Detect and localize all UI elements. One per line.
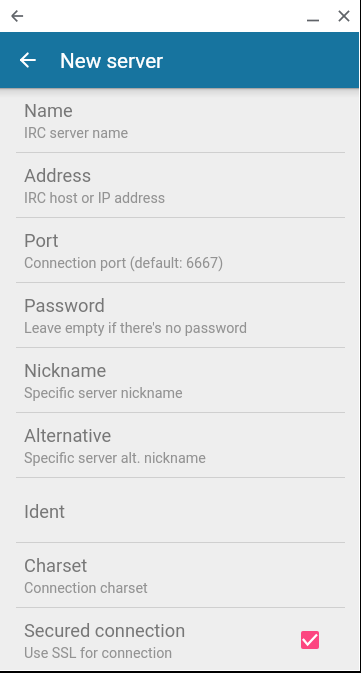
staticText: Alternative bbox=[24, 425, 112, 446]
staticText: Connection charset bbox=[24, 580, 148, 597]
button[interactable]: Charset bbox=[0, 543, 361, 608]
staticText: Name bbox=[24, 100, 73, 121]
staticText: Connection port (default: 6667) bbox=[24, 255, 224, 272]
button[interactable]: Password bbox=[0, 283, 361, 348]
staticText: Ident bbox=[24, 501, 66, 522]
staticText: New server bbox=[60, 49, 164, 73]
button[interactable]: Navigate up bbox=[8, 40, 48, 80]
button[interactable]: Nickname bbox=[0, 348, 361, 413]
staticText: Use SSL for connection bbox=[24, 645, 173, 662]
staticText: Specific server alt. nickname bbox=[24, 450, 206, 467]
staticText: IRC host or IP address bbox=[24, 190, 166, 207]
button[interactable]: Close bbox=[329, 1, 359, 31]
button[interactable]: Port bbox=[0, 218, 361, 283]
button[interactable]: Back bbox=[1, 0, 34, 32]
button[interactable]: Secured connection bbox=[0, 608, 361, 673]
button[interactable]: Secured connection bbox=[301, 631, 319, 649]
staticText: Port bbox=[24, 230, 59, 251]
staticText: Password bbox=[24, 295, 105, 316]
staticText: Nickname bbox=[24, 360, 107, 381]
staticText: Address bbox=[24, 165, 92, 186]
button[interactable]: Address bbox=[0, 153, 361, 218]
staticText: Secured connection bbox=[24, 620, 186, 641]
staticText: IRC server name bbox=[24, 125, 129, 142]
button[interactable]: Ident bbox=[0, 478, 361, 543]
staticText: Leave empty if there's no password bbox=[24, 320, 248, 337]
button[interactable]: Name bbox=[0, 88, 361, 153]
button[interactable]: Minimize bbox=[298, 1, 328, 31]
staticText: Charset bbox=[24, 555, 88, 576]
staticText: Specific server nickname bbox=[24, 385, 183, 402]
button[interactable]: Alternative bbox=[0, 413, 361, 478]
